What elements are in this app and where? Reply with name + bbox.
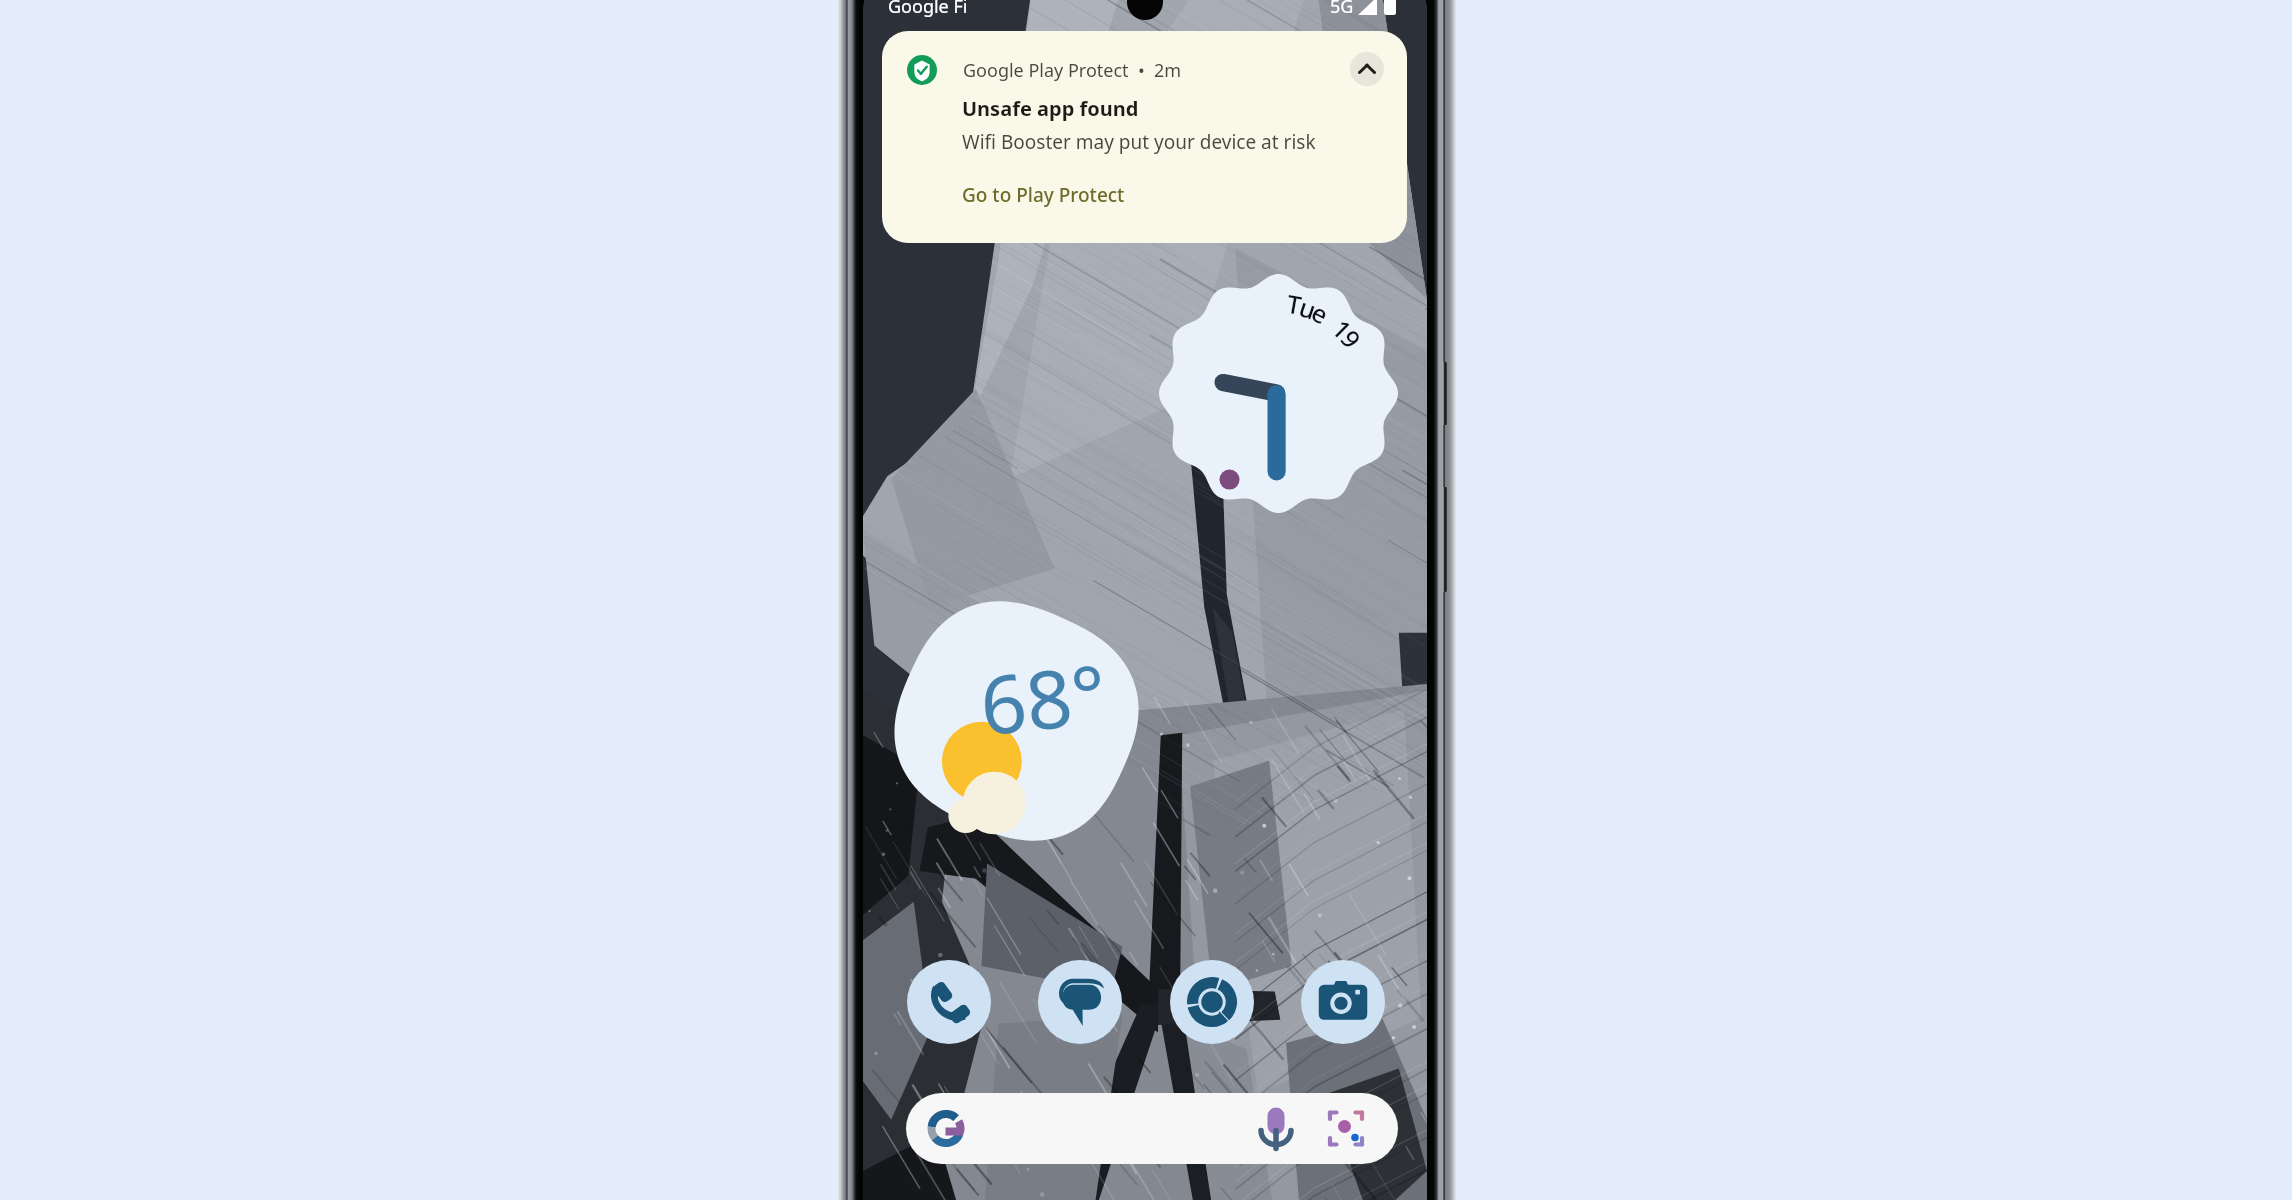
staticText: Unsafe app found bbox=[962, 95, 1139, 122]
button[interactable]: Google Play Protect • 2m bbox=[882, 31, 1407, 243]
button[interactable]: Search bbox=[906, 1093, 1398, 1164]
button[interactable]: Phone bbox=[907, 960, 991, 1044]
staticText: 5G bbox=[1330, 0, 1354, 19]
staticText: 1 bbox=[1325, 312, 1360, 346]
staticText: Go to Play Protect bbox=[962, 182, 1125, 208]
staticText: e bbox=[1306, 294, 1335, 332]
button[interactable]: Messages bbox=[1038, 960, 1122, 1044]
staticText: Google Fi bbox=[888, 0, 968, 19]
staticText: u bbox=[1295, 289, 1321, 327]
staticText: 9 bbox=[1333, 323, 1370, 355]
button[interactable]: Chrome bbox=[1170, 960, 1254, 1044]
button[interactable]: Camera bbox=[1301, 960, 1385, 1044]
staticText: 68° bbox=[975, 637, 1111, 758]
staticText: T bbox=[1284, 286, 1305, 322]
staticText: Google Play Protect • 2m bbox=[963, 58, 1182, 83]
button[interactable]: Collapse notification bbox=[1350, 52, 1384, 86]
button[interactable]: Weather, 68 degrees bbox=[897, 603, 1136, 839]
button[interactable]: Go to Play Protect bbox=[962, 182, 1125, 208]
staticText: Wifi Booster may put your device at risk bbox=[962, 129, 1316, 155]
button[interactable]: Clock widget, Tue 19 bbox=[1159, 274, 1398, 513]
